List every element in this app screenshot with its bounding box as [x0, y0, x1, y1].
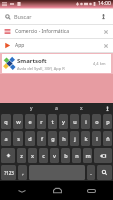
other: Shift — [5, 152, 12, 159]
staticText: u — [73, 118, 77, 125]
staticText: r — [40, 118, 43, 125]
button[interactable]: e — [25, 114, 35, 129]
staticText: 14:00 — [98, 0, 111, 7]
button[interactable]: x — [28, 148, 37, 163]
staticText: x — [80, 105, 83, 112]
staticText: k — [84, 135, 88, 142]
staticText: p — [106, 118, 110, 125]
staticText: Buscar — [14, 13, 32, 20]
button[interactable]: Buscar — [0, 9, 113, 24]
staticText: a — [55, 105, 58, 112]
button[interactable]: o — [92, 114, 101, 129]
other: Voice search — [101, 14, 106, 19]
button[interactable]: s — [13, 131, 23, 146]
button[interactable]: Shift — [1, 148, 15, 163]
other: Backspace — [99, 152, 107, 160]
button[interactable]: p — [103, 114, 112, 129]
button[interactable]: a — [1, 131, 11, 146]
button[interactable]: Smartsoft — [0, 53, 113, 74]
other: Remove suggestion — [103, 43, 109, 49]
staticText: e — [28, 118, 32, 125]
staticText: y — [62, 118, 65, 125]
other: Voice input — [105, 106, 110, 111]
staticText: j — [74, 135, 76, 142]
button[interactable]: k — [81, 131, 90, 146]
staticText: m — [85, 152, 91, 159]
button[interactable]: v — [50, 148, 59, 163]
button[interactable]: y — [59, 114, 68, 129]
button[interactable]: h — [59, 131, 68, 146]
staticText: y — [30, 105, 33, 112]
staticText: h — [62, 135, 66, 142]
button[interactable]: Recent apps — [78, 181, 104, 200]
staticText: f — [41, 135, 43, 142]
button[interactable]: j — [70, 131, 79, 146]
staticText: d — [28, 135, 32, 142]
button[interactable]: ñ — [103, 131, 112, 146]
button[interactable]: , — [18, 165, 27, 180]
button[interactable]: l — [92, 131, 101, 146]
staticText: . — [90, 169, 92, 176]
other: Search — [101, 169, 108, 176]
staticText: c — [42, 152, 45, 159]
button[interactable]: i — [81, 114, 90, 129]
button[interactable]: . — [87, 165, 95, 180]
staticText: x — [31, 152, 34, 159]
staticText: ñ — [106, 135, 110, 142]
staticText: z — [20, 152, 23, 159]
button[interactable]: z — [17, 148, 26, 163]
button[interactable]: r — [37, 114, 46, 129]
button[interactable]: f — [37, 131, 46, 146]
staticText: t — [51, 118, 54, 125]
staticText: i — [85, 118, 87, 125]
button[interactable]: b — [61, 148, 70, 163]
staticText: o — [95, 118, 99, 125]
other: Remove suggestion — [103, 29, 109, 35]
staticText: 4,4 km — [93, 61, 106, 66]
button[interactable]: g — [48, 131, 57, 146]
button[interactable]: Backspace — [94, 148, 112, 163]
button[interactable]: App — [0, 39, 113, 52]
staticText: n — [75, 152, 79, 159]
staticText: b — [64, 152, 68, 159]
button[interactable]: d — [25, 131, 35, 146]
button[interactable]: Back — [9, 181, 35, 200]
staticText: Avda del SysE, 30fl, App R — [17, 66, 65, 71]
button[interactable]: ?123 — [1, 165, 16, 180]
staticText: ?123 — [4, 170, 14, 176]
staticText: Smartsoft — [17, 57, 47, 65]
staticText: w — [16, 118, 21, 125]
button[interactable]: t — [48, 114, 57, 129]
button[interactable]: n — [72, 148, 81, 163]
staticText: v — [53, 152, 56, 159]
button[interactable]: c — [39, 148, 48, 163]
staticText: q — [4, 118, 8, 125]
button[interactable]: w — [13, 114, 23, 129]
button[interactable]: q — [1, 114, 11, 129]
staticText: App — [15, 42, 25, 49]
staticText: Comercio - Informática — [15, 28, 69, 35]
staticText: l — [96, 135, 98, 142]
button[interactable]: Comercio - Informática — [0, 25, 113, 38]
staticText: a — [4, 135, 8, 142]
button[interactable]: u — [70, 114, 79, 129]
button[interactable]: Search — [97, 165, 112, 180]
staticText: , — [22, 169, 24, 176]
button[interactable]: m — [83, 148, 92, 163]
staticText: s — [17, 135, 20, 142]
staticText: g — [51, 135, 55, 142]
button[interactable]: Home — [44, 181, 70, 200]
